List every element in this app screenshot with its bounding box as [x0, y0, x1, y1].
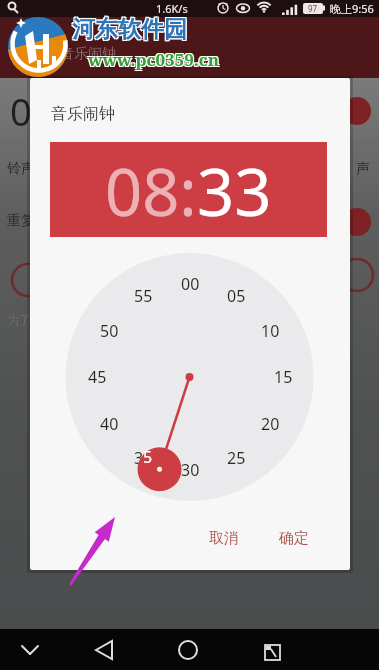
staticText: 确定 — [279, 529, 309, 548]
staticText: www.pc0359.cn — [87, 49, 219, 72]
staticText: 重复 — [7, 212, 35, 230]
button[interactable]: 确定 — [266, 522, 321, 554]
staticText: 15 — [274, 366, 293, 388]
staticText: 音乐闹钟 — [51, 104, 115, 124]
staticText: 33 — [197, 147, 272, 236]
staticText: 08 — [10, 85, 54, 137]
staticText: 50 — [100, 320, 119, 342]
staticText: www.pc0359.cn — [88, 48, 220, 71]
staticText: 05 — [227, 285, 246, 307]
button[interactable] — [172, 634, 204, 666]
button[interactable] — [14, 634, 46, 666]
staticText: 5 — [143, 446, 153, 468]
staticText: 晚上9:56 — [330, 1, 374, 16]
staticText: 00 — [181, 273, 200, 295]
staticText: 河东软件园 — [71, 14, 186, 43]
staticText: www.pc0359.cn — [89, 47, 221, 70]
staticText: 河东软件园 — [71, 16, 186, 45]
staticText: 声 — [356, 160, 370, 178]
staticText: 97 — [308, 3, 318, 14]
staticText: 08: — [105, 147, 197, 236]
staticText: 音乐闹钟 — [60, 45, 116, 63]
staticText: 河东软件园 — [73, 14, 188, 43]
staticText: www.pc0359.cn — [89, 49, 221, 72]
staticText: 55 — [134, 285, 153, 307]
staticText: 40 — [100, 413, 119, 435]
staticText: 25 — [227, 447, 246, 469]
staticText: 35 — [134, 447, 153, 469]
staticText: 1.6K/s — [156, 1, 188, 16]
staticText: www.pc0359.cn — [87, 47, 219, 70]
staticText: 河东软件园 — [72, 15, 187, 44]
staticText: 30 — [181, 459, 200, 481]
button[interactable] — [256, 634, 288, 666]
button[interactable] — [88, 634, 120, 666]
staticText: 河东软件园 — [73, 16, 188, 45]
button[interactable]: 取消 — [196, 522, 251, 554]
staticText: 取消 — [209, 529, 239, 548]
staticText: 铃声 — [7, 160, 35, 178]
staticText: 为了 — [7, 312, 31, 327]
staticText: 10 — [261, 320, 280, 342]
staticText: 20 — [261, 413, 280, 435]
staticText: 45 — [88, 366, 107, 388]
